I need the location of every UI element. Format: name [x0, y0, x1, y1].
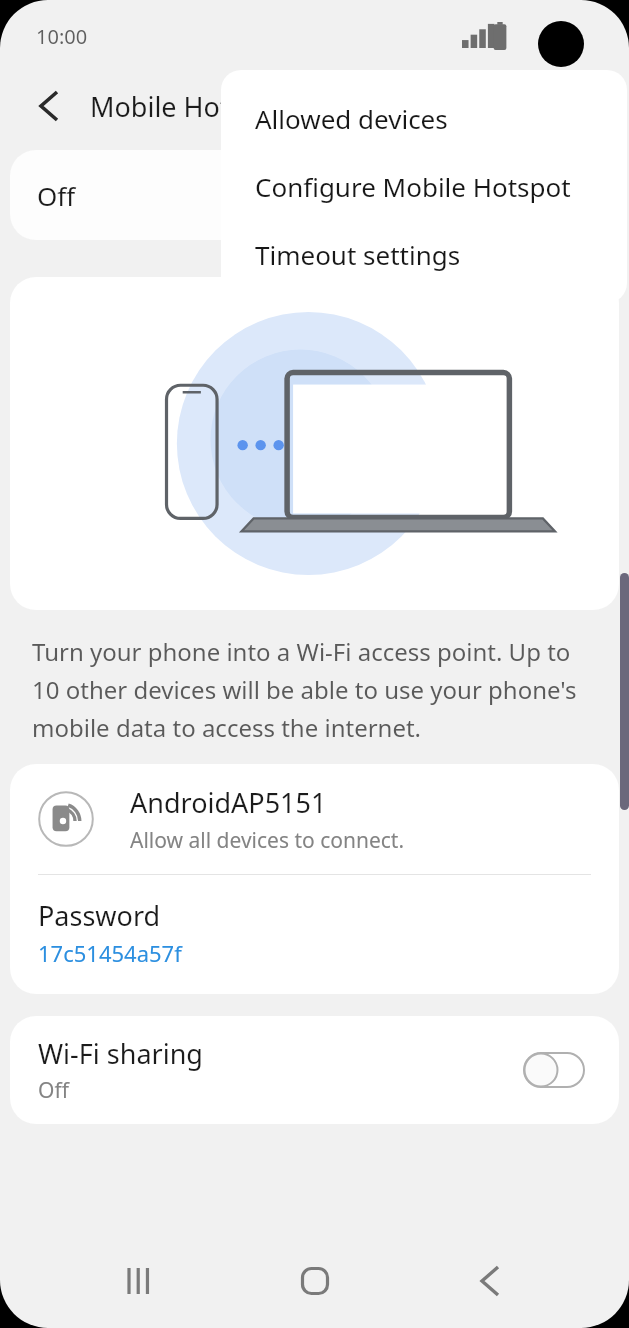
staticText: Off	[38, 1076, 69, 1105]
button[interactable]: Wi-Fi sharing toggle	[523, 1052, 585, 1088]
staticText: Mobile Hotspot	[90, 88, 286, 125]
staticText: AndroidAP5151	[130, 784, 327, 821]
button[interactable]: Back	[454, 1245, 526, 1317]
staticText: Allow all devices to connect.	[130, 826, 405, 855]
staticText: Allowed devices	[255, 101, 448, 136]
button[interactable]: Allowed devices	[221, 84, 627, 152]
staticText: Wi-Fi sharing	[38, 1035, 203, 1072]
button[interactable]: Home	[279, 1245, 351, 1317]
button[interactable]: Recents	[103, 1245, 175, 1317]
staticText: Turn your phone into a Wi-Fi access poin…	[32, 635, 597, 744]
button[interactable]: AndroidAP5151	[10, 764, 619, 874]
button[interactable]: Back	[26, 83, 72, 129]
staticText: 10:00	[36, 23, 88, 50]
staticText: Configure Mobile Hotspot	[255, 169, 571, 204]
button[interactable]: Password	[10, 875, 619, 994]
staticText: 17c51454a57f	[38, 938, 182, 968]
staticText: Password	[38, 897, 161, 934]
button[interactable]: Off	[10, 150, 619, 240]
staticText: Timeout settings	[255, 237, 461, 272]
staticText: Off	[37, 178, 76, 213]
button[interactable]: Configure Mobile Hotspot	[221, 152, 627, 220]
button[interactable]: Wi-Fi sharing	[10, 1016, 619, 1124]
button[interactable]: Timeout settings	[221, 220, 627, 288]
